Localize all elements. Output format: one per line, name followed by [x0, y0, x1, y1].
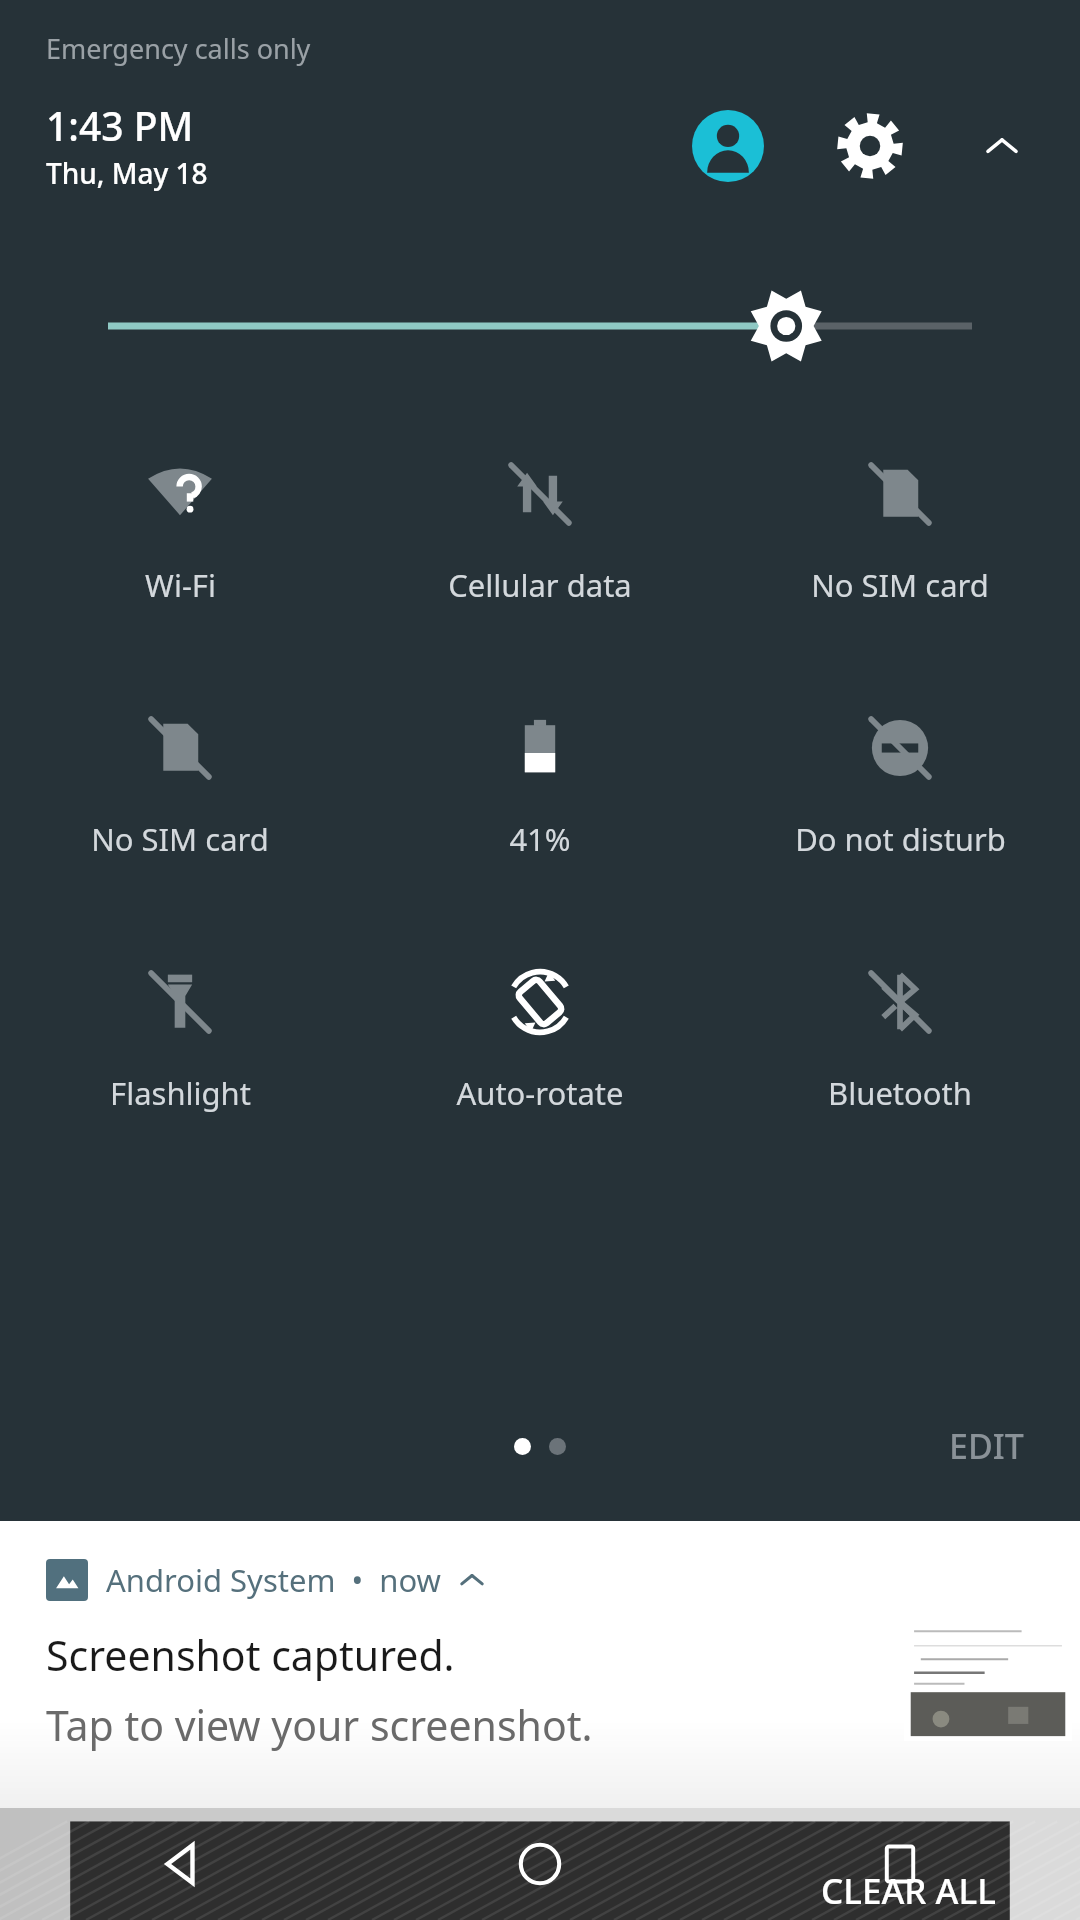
staticText: Wi-Fi — [145, 564, 216, 606]
button[interactable]: Auto-rotate — [360, 954, 720, 1114]
button[interactable]: Wi-Fi — [0, 446, 360, 606]
button[interactable]: Brightness — [0, 278, 1080, 374]
staticText: Android System • now — [106, 1559, 441, 1601]
button[interactable]: No SIM card — [720, 446, 1080, 606]
button[interactable]: 41% — [360, 700, 720, 860]
button[interactable]: Back — [0, 1808, 360, 1920]
button[interactable]: Settings — [828, 104, 912, 188]
button[interactable]: Bluetooth — [720, 954, 1080, 1114]
button[interactable]: Do not disturb — [720, 700, 1080, 860]
staticText: Emergency calls only — [46, 30, 311, 67]
button[interactable]: CLEAR ALL — [821, 1867, 996, 1915]
staticText: Bluetooth — [828, 1072, 972, 1114]
staticText: Screenshot captured. — [46, 1627, 455, 1683]
button[interactable]: User account — [686, 104, 770, 188]
staticText: Flashlight — [110, 1072, 251, 1114]
button[interactable]: Android System • now — [0, 1521, 1080, 1753]
button[interactable]: Flashlight — [0, 954, 360, 1114]
staticText: No SIM card — [91, 818, 269, 860]
staticText: Tap to view your screenshot. — [46, 1697, 593, 1753]
button[interactable]: Collapse — [964, 108, 1040, 184]
button[interactable]: Cellular data — [360, 446, 720, 606]
staticText: Cellular data — [448, 564, 632, 606]
button[interactable]: No SIM card — [0, 700, 360, 860]
staticText: 41% — [509, 818, 571, 860]
button[interactable]: Recents — [720, 1808, 1080, 1920]
staticText: Thu, May 18 — [46, 154, 208, 192]
button[interactable]: Home — [360, 1808, 720, 1920]
staticText: Auto-rotate — [456, 1072, 624, 1114]
staticText: 1:43 PM — [46, 99, 194, 152]
staticText: Do not disturb — [795, 818, 1006, 860]
button[interactable]: EDIT — [933, 1411, 1040, 1481]
staticText: EDIT — [949, 1423, 1024, 1469]
staticText: CLEAR ALL — [821, 1867, 996, 1915]
staticText: No SIM card — [811, 564, 989, 606]
